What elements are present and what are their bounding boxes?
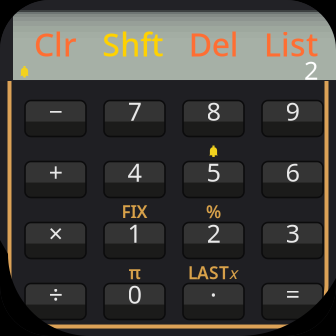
staticText: 8 — [206, 94, 220, 128]
button[interactable]: List — [264, 29, 318, 59]
staticText: LAST𝑥 — [188, 261, 239, 284]
button[interactable]: = — [262, 283, 323, 319]
staticText: 0 — [127, 277, 141, 311]
button[interactable]: 4 — [104, 161, 165, 197]
button[interactable]: + — [25, 161, 86, 197]
button[interactable]: − — [25, 100, 86, 136]
button[interactable]: 8 — [183, 100, 244, 136]
staticText: 2 — [206, 216, 220, 250]
staticText: · — [210, 277, 217, 311]
button[interactable]: × — [25, 222, 86, 258]
staticText: Del — [189, 23, 239, 65]
staticText: 9 — [285, 94, 299, 128]
button[interactable]: Del — [189, 29, 239, 59]
staticText: 4 — [127, 155, 141, 189]
staticText: % — [206, 200, 221, 223]
staticText: − — [48, 94, 62, 128]
button[interactable]: 1 — [104, 222, 165, 258]
staticText: 2 — [304, 53, 318, 87]
button[interactable]: Shft — [102, 29, 163, 59]
staticText: π — [128, 261, 140, 284]
staticText: Clr — [34, 23, 77, 65]
staticText: ÷ — [48, 277, 62, 311]
button[interactable]: 3 — [262, 222, 323, 258]
staticText: Shft — [102, 23, 163, 65]
button[interactable]: · — [183, 283, 244, 319]
button[interactable]: 2 — [183, 222, 244, 258]
staticText: List — [264, 23, 318, 65]
button[interactable]: 7 — [104, 100, 165, 136]
staticText: + — [48, 155, 62, 189]
button[interactable]: 5 — [183, 161, 244, 197]
button[interactable]: Clr — [34, 29, 77, 59]
staticText: 6 — [285, 155, 299, 189]
staticText: = — [285, 277, 299, 311]
staticText: FIX — [121, 200, 147, 223]
button[interactable]: 0 — [104, 283, 165, 319]
staticText: 5 — [206, 155, 220, 189]
button[interactable]: 6 — [262, 161, 323, 197]
staticText: 7 — [127, 94, 141, 128]
button[interactable]: ÷ — [25, 283, 86, 319]
staticText: 1 — [127, 216, 141, 250]
staticText: 3 — [285, 216, 299, 250]
button[interactable]: 9 — [262, 100, 323, 136]
staticText: × — [48, 216, 62, 250]
